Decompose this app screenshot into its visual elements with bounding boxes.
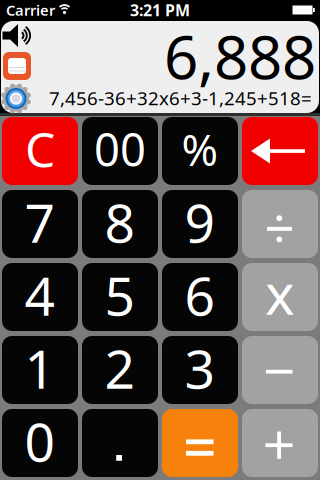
button[interactable]: x <box>242 263 318 331</box>
staticText: 9 <box>184 187 215 257</box>
button[interactable]: 00 <box>82 117 158 185</box>
staticText: 3:21 PM <box>130 0 190 21</box>
staticText: x <box>265 256 295 330</box>
button[interactable]: Divide <box>242 190 318 258</box>
staticText: 2 <box>104 333 135 403</box>
staticText: 1 <box>24 333 55 403</box>
button[interactable]: Equals <box>162 409 238 477</box>
staticText: 6 <box>184 260 215 330</box>
staticText: 00 <box>94 119 146 179</box>
staticText: 8 <box>104 187 135 257</box>
button[interactable]: 2 <box>82 336 158 404</box>
staticText: 4 <box>24 260 55 330</box>
button[interactable]: 4 <box>2 263 78 331</box>
button[interactable]: 3 <box>162 336 238 404</box>
button[interactable]: 7 <box>2 190 78 258</box>
button[interactable]: Settings <box>0 83 31 114</box>
button[interactable]: 5 <box>82 263 158 331</box>
button[interactable]: Subtract <box>242 336 318 404</box>
button[interactable]: Delete <box>242 117 318 185</box>
staticText: C <box>25 117 55 181</box>
staticText: 7,456-36+32x6+3-1,245+518= <box>49 86 312 110</box>
button[interactable]: Decimal point <box>82 409 158 477</box>
staticText: 5 <box>104 260 135 330</box>
staticText: % <box>181 120 218 178</box>
staticText: 6,888 <box>164 16 316 96</box>
button[interactable]: C <box>2 117 78 185</box>
button[interactable]: Add <box>242 409 318 477</box>
staticText: 3 <box>184 333 215 403</box>
staticText: 0 <box>24 406 55 476</box>
button[interactable]: 8 <box>82 190 158 258</box>
button[interactable]: 0 <box>2 409 78 477</box>
button[interactable]: 9 <box>162 190 238 258</box>
staticText: 7 <box>24 187 55 257</box>
button[interactable]: % <box>162 117 238 185</box>
button[interactable]: Sound <box>2 24 31 47</box>
staticText: Carrier <box>6 0 55 20</box>
button[interactable]: History tape <box>3 52 31 80</box>
button[interactable]: 6 <box>162 263 238 331</box>
button[interactable]: 1 <box>2 336 78 404</box>
